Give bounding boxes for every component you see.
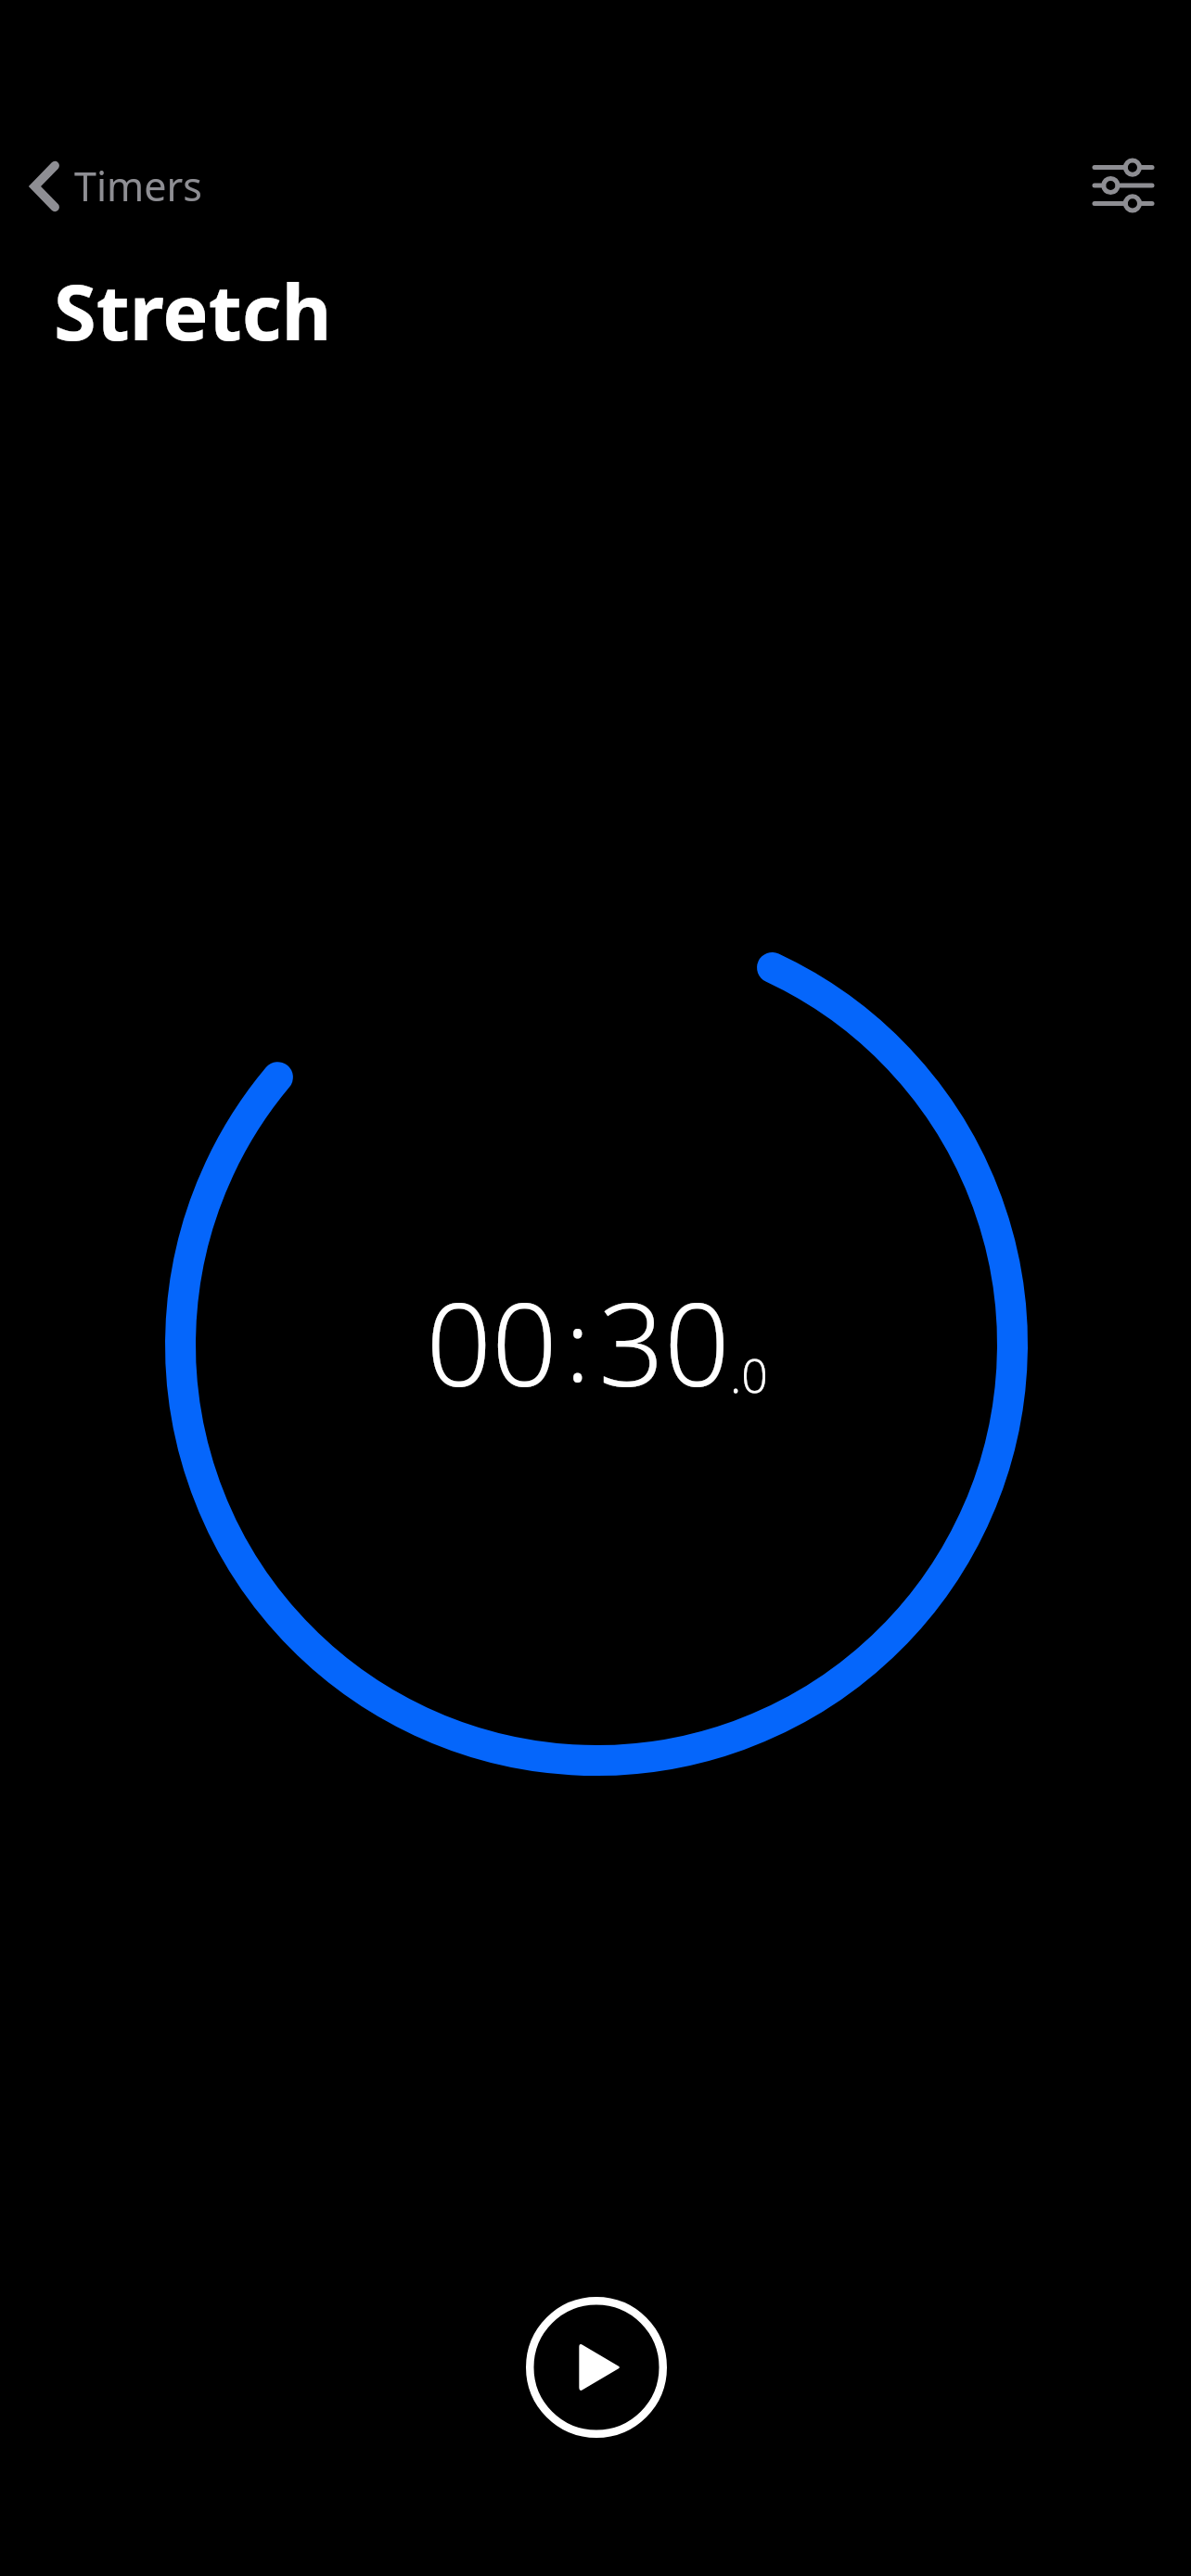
staticText: .0 — [730, 1344, 768, 1407]
staticText: 30 — [598, 1263, 730, 1420]
button[interactable]: Start timer — [511, 2282, 682, 2453]
button[interactable]: Timers — [22, 153, 210, 219]
staticText: : — [566, 1279, 590, 1410]
button[interactable]: Settings — [1083, 146, 1163, 225]
staticText: Stretch — [54, 258, 332, 363]
staticText: 00 — [426, 1263, 557, 1420]
staticText: Timers — [74, 159, 202, 213]
